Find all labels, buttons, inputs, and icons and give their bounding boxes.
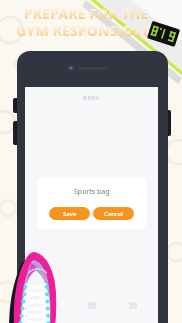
staticText: PREPARE FOR THE bbox=[24, 4, 149, 23]
staticText: Cancel bbox=[104, 210, 123, 218]
button[interactable]: Profile bbox=[117, 294, 149, 316]
staticText: GYM RESPONSIBLY bbox=[16, 21, 150, 40]
button[interactable]: Home bbox=[34, 294, 66, 316]
staticText: Sports bag bbox=[74, 187, 110, 197]
staticText: Save bbox=[63, 210, 77, 218]
button[interactable]: Cancel bbox=[93, 207, 134, 220]
button[interactable]: Save bbox=[49, 207, 90, 220]
button[interactable]: Bag bbox=[76, 294, 108, 316]
staticText: MENU bbox=[83, 95, 100, 101]
